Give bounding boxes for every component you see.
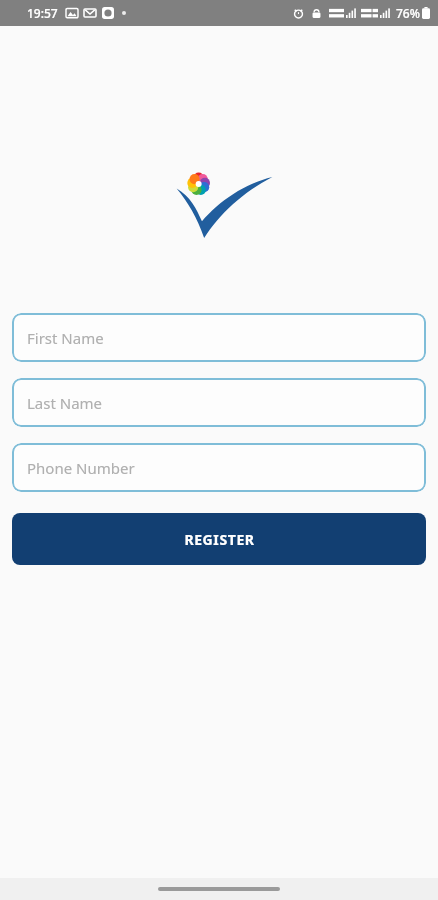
button[interactable]: First Name — [12, 313, 426, 362]
staticText: REGISTER — [184, 530, 255, 549]
staticText: Last Name — [27, 393, 103, 413]
button[interactable]: Last Name — [12, 378, 426, 427]
other: App logo — [164, 164, 274, 238]
staticText: Phone Number — [27, 458, 135, 478]
button[interactable]: REGISTER — [12, 513, 426, 565]
button[interactable]: Phone Number — [12, 443, 426, 492]
staticText: First Name — [27, 328, 104, 348]
staticText: 76% — [396, 5, 420, 21]
staticText: 19:57 — [27, 5, 58, 21]
other: Home gesture bar — [158, 887, 280, 891]
